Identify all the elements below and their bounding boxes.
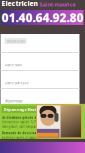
staticText: electricien <box>6 38 24 44</box>
staticText: 01.40.64.92.80 <box>1 9 83 25</box>
staticText: Demande de devis instantané <box>1 131 47 135</box>
staticText: Un électricien près de chez vous <box>1 116 48 119</box>
staticText: Dépannage Electricien <box>3 107 47 112</box>
staticText: Devis gratuit, tarif transparent <box>1 125 40 128</box>
staticText: Saint-maurice <box>39 1 75 8</box>
staticText: votre nom <box>4 62 22 67</box>
button[interactable]: votre adresse <box>0 70 79 88</box>
staticText: Intervention rapide 7j/7 24h/24 <box>1 120 48 124</box>
staticText: Electricien agréé et assuré <box>1 136 37 139</box>
button[interactable]: dépannage <box>0 88 79 106</box>
staticText: dépannage <box>4 98 22 103</box>
staticText: Déplacement offert sur devis <box>1 141 40 144</box>
button[interactable]: Dépannage Electricien <box>1 106 49 113</box>
staticText: Electricien <box>1 0 37 8</box>
staticText: votre adresse <box>4 80 28 85</box>
button[interactable]: 01.40.64.92.80 <box>1 10 83 25</box>
button[interactable]: votre nom <box>0 52 79 70</box>
